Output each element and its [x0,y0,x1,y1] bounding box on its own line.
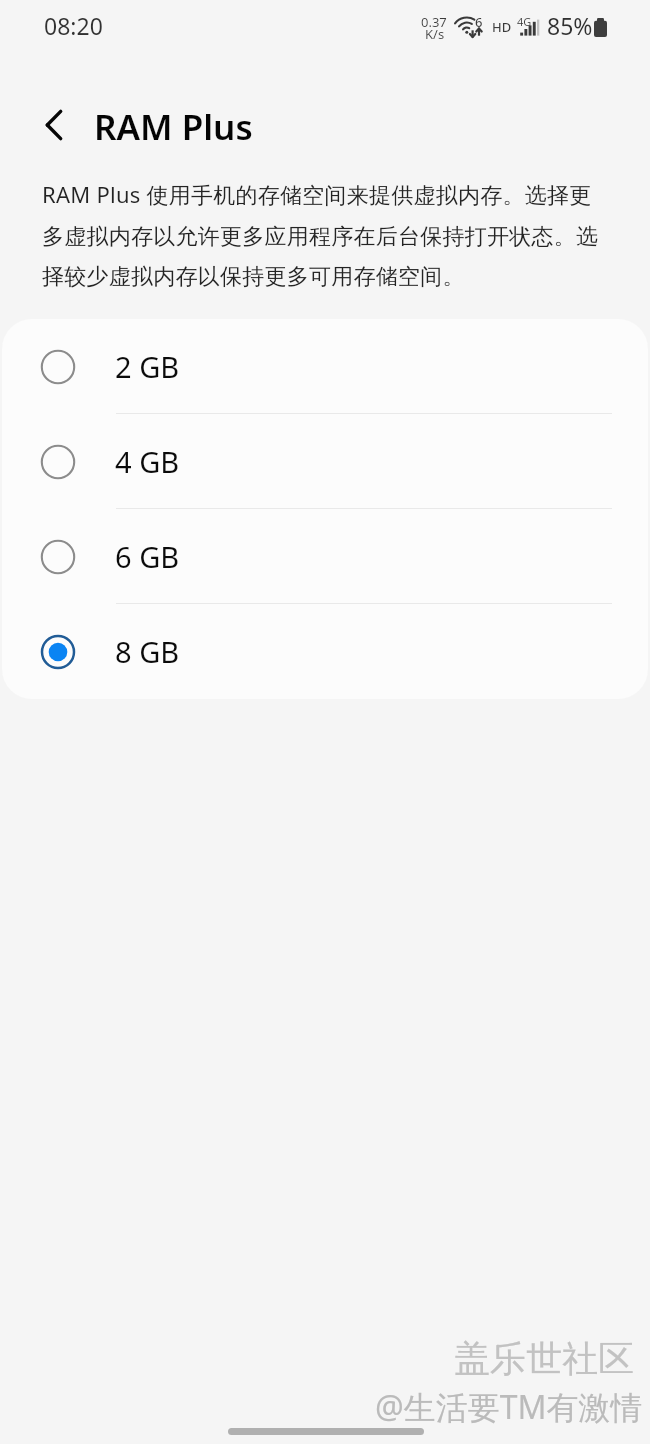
button[interactable]: Navigate up [26,100,82,150]
staticText: 6 [475,13,483,31]
staticText: 08:20 [44,10,103,41]
staticText: 0.37 [421,13,447,31]
staticText: 2 GB [115,347,180,386]
button[interactable]: 2 GB [2,319,648,414]
staticText: 盖乐世社区 [454,1336,634,1381]
button[interactable]: 6 GB [2,509,648,604]
staticText: 6 GB [115,537,180,576]
staticText: RAM Plus 使用手机的存储空间来提供虚拟内存。选择更多虚拟内存以允许更多应… [42,172,604,294]
staticText: 8 GB [115,632,180,671]
staticText: HD [492,18,512,36]
staticText: K/s [425,25,445,43]
staticText: @生活要TM有激情 [375,1385,643,1429]
staticText: 85% [547,10,593,41]
staticText: RAM Plus [94,103,253,150]
button[interactable]: 4 GB [2,414,648,509]
staticText: 4 GB [115,442,180,481]
staticText: 4G [517,14,532,29]
button[interactable]: 8 GB [2,604,648,699]
